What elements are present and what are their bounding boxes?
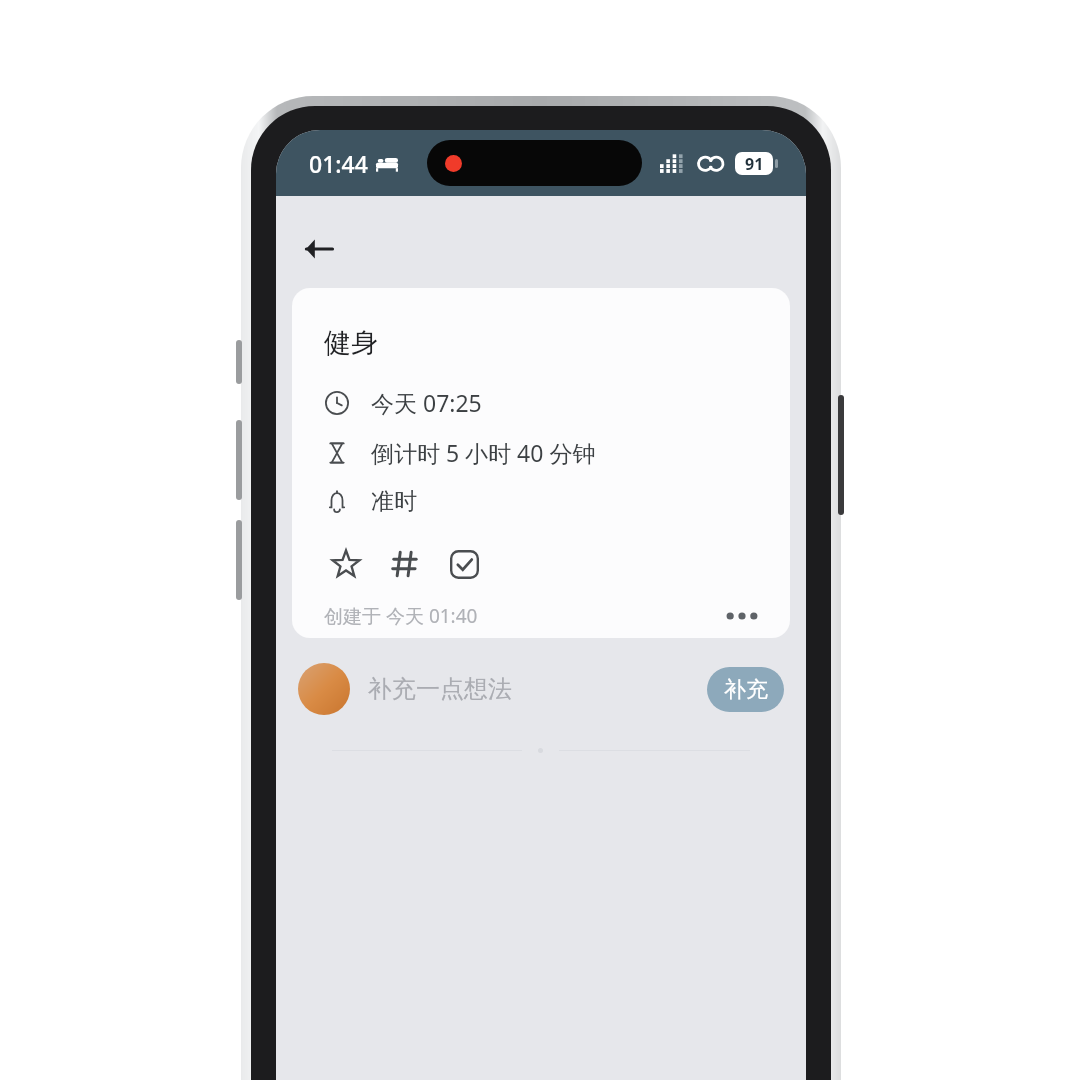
- staticText: 健身: [324, 326, 378, 360]
- button[interactable]: Star: [324, 542, 368, 586]
- staticText: 今天 07:25: [371, 387, 482, 418]
- button[interactable]: Back: [290, 220, 348, 278]
- button[interactable]: 健身: [292, 288, 790, 638]
- button[interactable]: Tag: [383, 542, 427, 586]
- staticText: 创建于 今天 01:40: [324, 603, 478, 629]
- button[interactable]: Complete: [442, 542, 486, 586]
- staticText: 准时: [371, 487, 417, 516]
- staticText: 倒计时 5 小时 40 分钟: [371, 437, 596, 468]
- button[interactable]: 补充一点想法: [298, 652, 784, 726]
- button[interactable]: More options: [718, 594, 766, 638]
- staticText: 补充: [724, 676, 768, 704]
- button[interactable]: 补充: [707, 667, 784, 712]
- staticText: 01:44: [309, 148, 368, 179]
- staticText: 补充一点想法: [368, 674, 512, 704]
- staticText: 91: [745, 153, 764, 175]
